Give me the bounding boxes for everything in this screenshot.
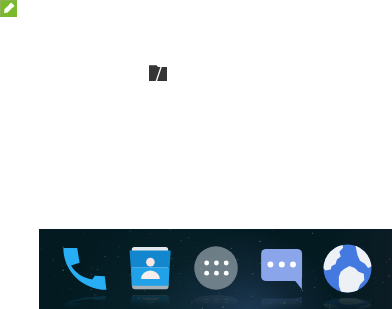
button[interactable]: Phone [63,247,107,291]
button[interactable]: Browser [323,244,372,293]
button[interactable]: Contacts [129,247,172,290]
button[interactable]: Notes [0,0,17,17]
button[interactable]: Apps [194,246,238,290]
button[interactable]: Messaging [260,246,305,291]
button[interactable]: Files [149,65,167,81]
